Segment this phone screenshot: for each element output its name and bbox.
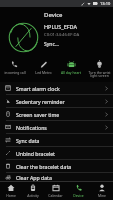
- staticText: Sync...: [44, 41, 59, 48]
- button[interactable]: Incoming call: [0, 58, 29, 82]
- staticText: Led Metro: [35, 70, 52, 75]
- button[interactable]: Unbind bracelet: [0, 147, 113, 159]
- other: Led Metro: [39, 60, 48, 69]
- other: Device: [75, 184, 83, 192]
- button[interactable]: Sedentary reminder: [0, 95, 113, 107]
- staticText: Device: [73, 193, 84, 198]
- other: Turn the wrist light screen: [95, 60, 104, 69]
- other: Home: [7, 184, 15, 192]
- button[interactable]: Clear the bracelet data: [0, 160, 113, 172]
- staticText: All day heart: [61, 70, 81, 75]
- staticText: Clear App data: [16, 174, 108, 181]
- staticText: Home: [6, 193, 16, 198]
- button[interactable]: Sync data: [0, 134, 113, 146]
- staticText: Unbind bracelet: [16, 150, 108, 157]
- staticText: Sedentary reminder: [16, 98, 105, 105]
- button[interactable]: Calendar: [44, 182, 67, 200]
- staticText: Mine: [98, 193, 106, 198]
- other: All day heart rate: [67, 60, 76, 69]
- button[interactable]: Device: [67, 182, 90, 200]
- staticText: Calendar: [48, 193, 63, 198]
- staticText: incoming call: [4, 70, 26, 75]
- other: Calendar: [52, 184, 60, 192]
- staticText: Notifications: [16, 124, 105, 131]
- other: Mine: [98, 184, 106, 192]
- staticText: 13:10: [100, 1, 111, 6]
- other: Incoming call: [10, 60, 19, 69]
- staticText: Clear the bracelet data: [16, 163, 108, 170]
- staticText: Sync data: [16, 137, 108, 144]
- button[interactable]: Notifications: [0, 121, 113, 133]
- button[interactable]: Clear App data: [0, 173, 113, 181]
- staticText: Device: [44, 11, 63, 19]
- staticText: Smart alarm clock: [16, 85, 105, 92]
- other: Activity: [29, 184, 37, 192]
- button[interactable]: Home: [0, 182, 22, 200]
- staticText: Screen saver time: [16, 111, 105, 118]
- button[interactable]: Turn the wrist light screen: [85, 58, 113, 82]
- button[interactable]: Led Metro: [29, 58, 57, 82]
- staticText: HPLUS_EFDA: [44, 23, 78, 30]
- staticText: C0:01:34:46:EF:DA: [44, 32, 80, 38]
- button[interactable]: Smart alarm clock: [0, 82, 113, 94]
- button[interactable]: Screen saver time: [0, 108, 113, 120]
- staticText: Activity: [27, 193, 39, 198]
- staticText: Turn the wrist light screen: [88, 70, 111, 78]
- button[interactable]: Activity: [22, 182, 44, 200]
- button[interactable]: All day heart rate: [57, 58, 85, 82]
- button[interactable]: Mine: [90, 182, 113, 200]
